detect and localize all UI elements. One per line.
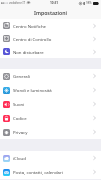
staticText: Suoni bbox=[13, 101, 25, 107]
button[interactable]: iCloud bbox=[0, 151, 101, 165]
staticText: Generali bbox=[13, 73, 30, 79]
button[interactable]: Posta, contatti, calendari bbox=[0, 165, 101, 179]
staticText: Privacy bbox=[13, 129, 28, 135]
staticText: Posta, contatti, calendari bbox=[13, 169, 63, 175]
button[interactable]: Privacy bbox=[0, 125, 101, 139]
button[interactable]: Sfondi e luminosità bbox=[0, 83, 101, 97]
button[interactable]: Codice bbox=[0, 111, 101, 125]
button[interactable]: Centro di Controllo bbox=[0, 32, 101, 45]
button[interactable]: Generali bbox=[0, 69, 101, 83]
button[interactable]: Centro Notifiche bbox=[0, 19, 101, 32]
staticText: iCloud bbox=[13, 155, 26, 161]
staticText: 10:31 bbox=[50, 1, 59, 5]
button[interactable]: Suoni bbox=[0, 97, 101, 111]
staticText: Sfondi e luminosità bbox=[13, 87, 52, 93]
staticText: Centro Notifiche bbox=[13, 23, 47, 29]
staticText: Impostazioni bbox=[34, 9, 68, 16]
staticText: Centro di Controllo bbox=[13, 36, 52, 42]
staticText: 98% bbox=[86, 1, 92, 5]
staticText: Non disturbare bbox=[13, 49, 44, 55]
button[interactable]: Non disturbare bbox=[0, 45, 101, 58]
staticText: Codice bbox=[13, 115, 27, 121]
staticText: vodafone IT bbox=[9, 1, 26, 5]
